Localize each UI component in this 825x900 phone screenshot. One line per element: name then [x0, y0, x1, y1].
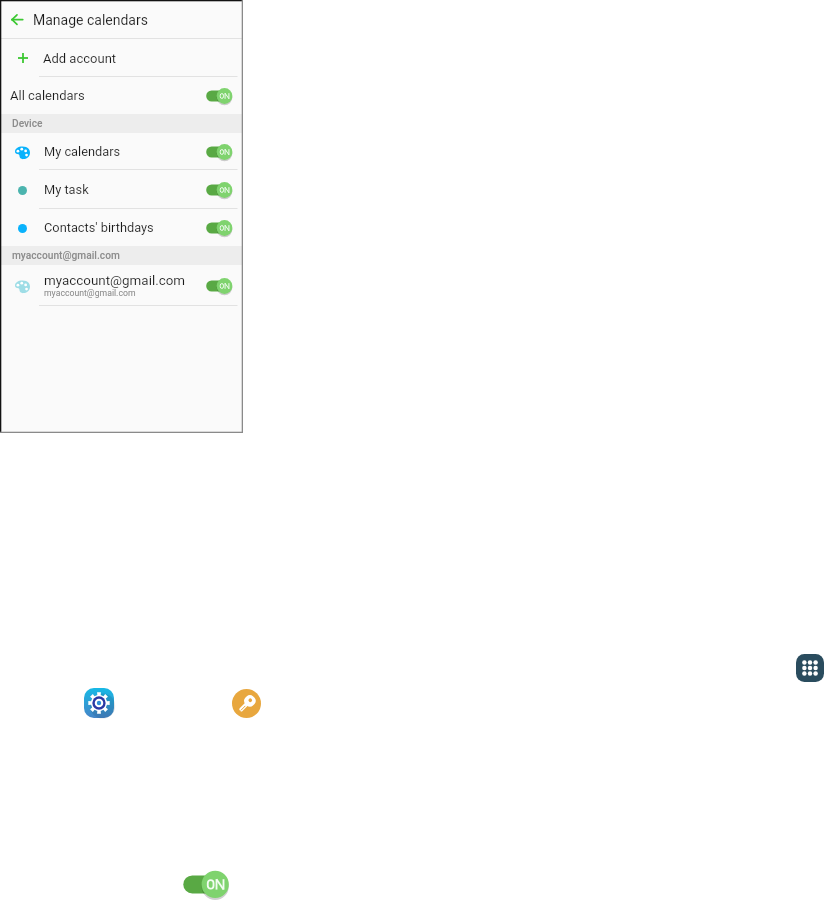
staticText: Add account	[43, 51, 117, 66]
staticText: myaccount@gmail.com	[44, 288, 136, 298]
staticText: All calendars	[10, 88, 85, 103]
staticText: Device	[12, 118, 43, 130]
staticText: Manage calendars	[33, 12, 148, 28]
button[interactable]: Back	[0, 0, 33, 39]
staticText: myaccount@gmail.com	[44, 273, 186, 289]
staticText: Contacts' birthdays	[44, 220, 154, 235]
button[interactable]: Contacts' birthdays	[0, 209, 243, 246]
button[interactable]: Password	[232, 689, 261, 718]
staticText: My task	[44, 182, 89, 197]
button[interactable]: Apps	[796, 654, 824, 682]
button[interactable]: Toggle on	[182, 868, 230, 900]
button[interactable]: Settings	[84, 688, 114, 718]
staticText: My calendars	[44, 144, 121, 159]
button[interactable]: myaccount@gmail.com	[0, 265, 243, 306]
staticText: myaccount@gmail.com	[12, 250, 120, 262]
button[interactable]: All calendars	[0, 77, 243, 114]
button[interactable]: Add account	[0, 39, 243, 77]
button[interactable]: My calendars	[0, 133, 243, 170]
button[interactable]: My task	[0, 170, 243, 209]
